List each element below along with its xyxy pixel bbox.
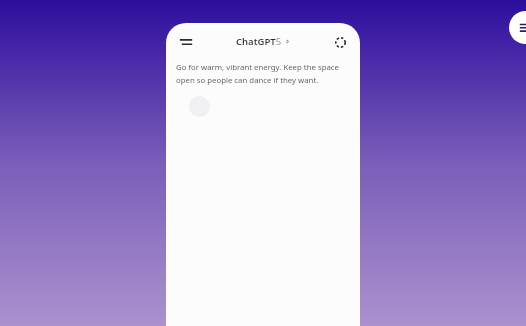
- button[interactable]: Menu: [172, 28, 200, 56]
- staticText: ChatGPT5: [236, 35, 282, 48]
- button[interactable]: Open menu: [509, 11, 526, 44]
- button[interactable]: ChatGPT5: [236, 35, 290, 48]
- button[interactable]: New chat: [327, 29, 353, 55]
- staticText: Go for warm, vibrant energy. Keep the sp…: [176, 62, 350, 85]
